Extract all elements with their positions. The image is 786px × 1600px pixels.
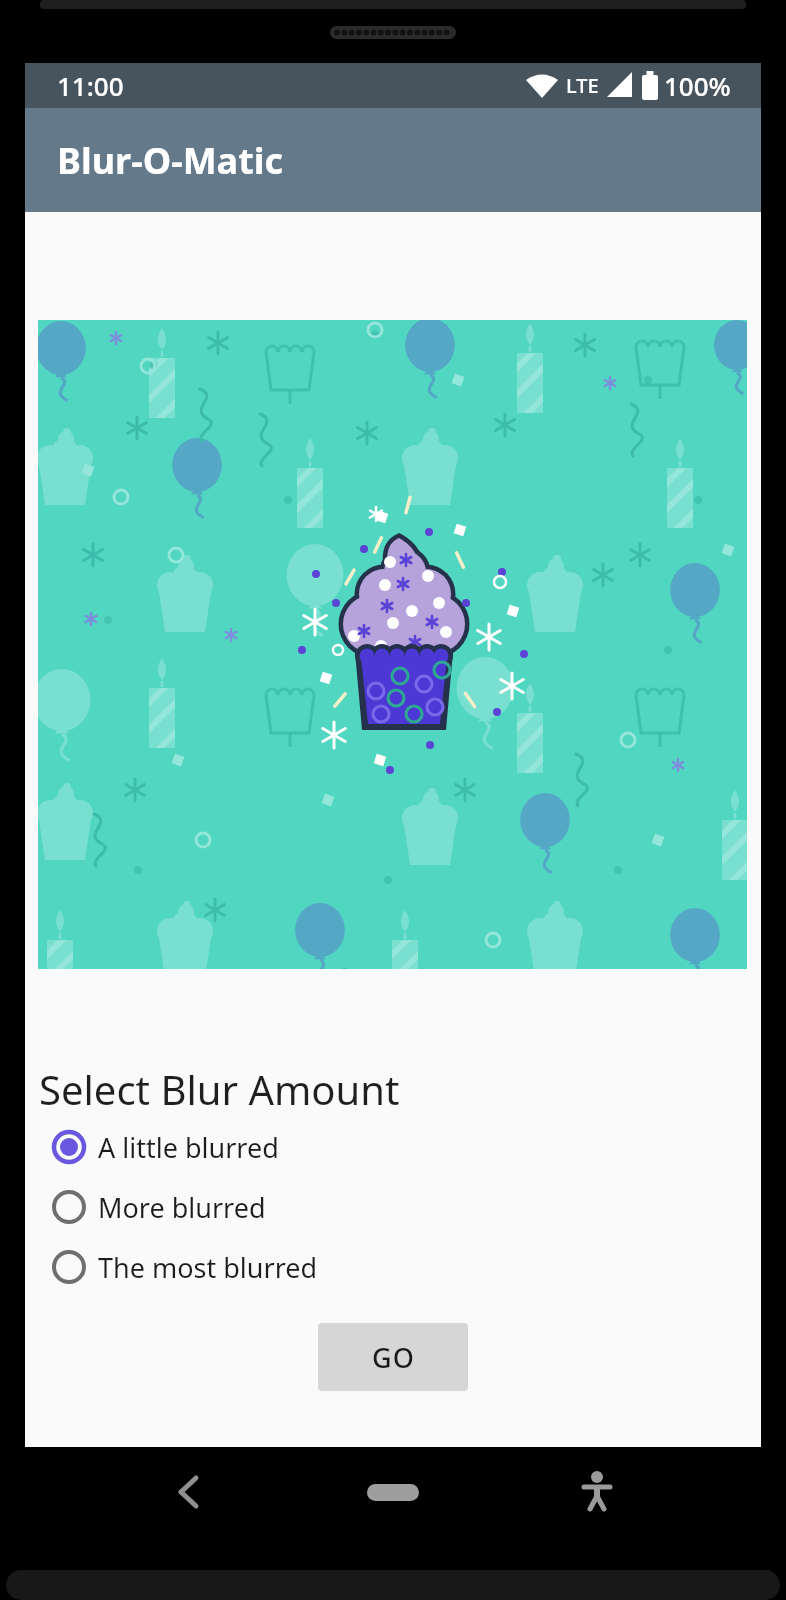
staticText: Blur-O-Matic bbox=[57, 136, 284, 185]
staticText: Select Blur Amount bbox=[39, 1062, 400, 1116]
staticText: GO bbox=[372, 1339, 415, 1376]
button[interactable]: A little blurred bbox=[52, 1117, 352, 1177]
staticText: More blurred bbox=[98, 1189, 266, 1226]
button[interactable] bbox=[0, 1460, 262, 1524]
button[interactable]: The most blurred bbox=[52, 1237, 352, 1297]
staticText: 100% bbox=[664, 68, 731, 103]
button[interactable] bbox=[262, 1460, 524, 1524]
staticText: The most blurred bbox=[98, 1249, 318, 1286]
button[interactable]: GO bbox=[318, 1323, 468, 1391]
button[interactable]: More blurred bbox=[52, 1177, 352, 1237]
staticText: 11:00 bbox=[57, 68, 124, 103]
button[interactable] bbox=[524, 1460, 786, 1524]
staticText: LTE bbox=[566, 72, 599, 99]
staticText: A little blurred bbox=[98, 1129, 279, 1166]
